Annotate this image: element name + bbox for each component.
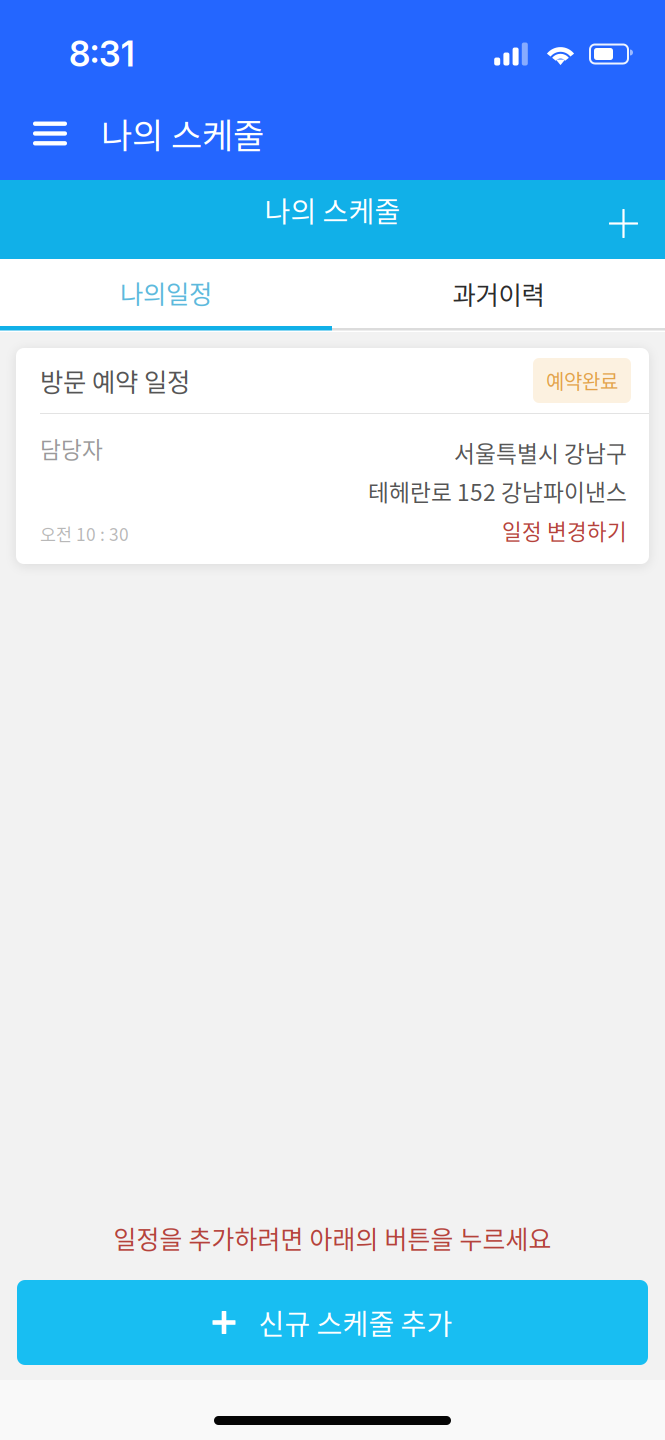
staticText: 방문 예약 일정 xyxy=(40,362,190,399)
staticText: 8:31 xyxy=(69,33,135,75)
button[interactable]: Menu xyxy=(0,104,101,163)
staticText: 예약완료 xyxy=(546,366,618,395)
staticText: 일정 변경하기 xyxy=(502,515,627,546)
button[interactable]: 과거이력 xyxy=(332,259,665,332)
staticText: 신규 스케줄 추가 xyxy=(258,1302,452,1343)
staticText: 담당자 xyxy=(40,432,103,465)
staticText: 오전 10 : 30 xyxy=(40,521,129,546)
button[interactable]: Add schedule xyxy=(587,186,665,253)
button[interactable]: 신규 스케줄 추가 xyxy=(17,1280,648,1365)
staticText: 과거이력 xyxy=(452,275,544,312)
button[interactable]: 나의일정 xyxy=(0,259,332,332)
button[interactable]: 방문 예약 일정 xyxy=(16,348,649,564)
staticText: 일정을 추가하려면 아래의 버튼을 누르세요 xyxy=(113,1220,551,1256)
staticText: 나의일정 xyxy=(120,274,212,311)
staticText: 서울특별시 강남구 xyxy=(454,436,627,469)
staticText: 나의 스케줄 xyxy=(264,190,400,230)
staticText: 테헤란로 152 강남파이낸스 xyxy=(368,475,627,508)
staticText: 나의 스케줄 xyxy=(101,109,264,158)
